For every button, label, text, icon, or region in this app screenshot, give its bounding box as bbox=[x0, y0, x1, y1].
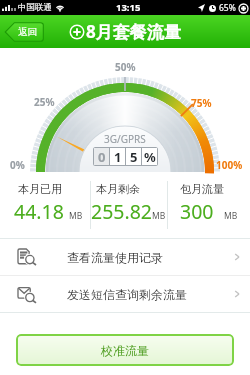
staticText: 返回 bbox=[18, 26, 37, 38]
button[interactable]: 返回 bbox=[4, 22, 44, 42]
staticText: 0 bbox=[98, 148, 106, 165]
staticText: 发送短信查询剩余流量 bbox=[67, 287, 187, 302]
button[interactable]: 校准流量 bbox=[16, 334, 234, 366]
staticText: 100% bbox=[216, 158, 243, 172]
staticText: 查看流量使用记录 bbox=[67, 250, 163, 265]
staticText: 13:15 bbox=[116, 1, 141, 14]
staticText: MB bbox=[152, 210, 166, 222]
staticText: 5 bbox=[130, 148, 138, 165]
staticText: % bbox=[144, 148, 156, 165]
staticText: 8月套餐流量 bbox=[86, 20, 181, 43]
staticText: 0% bbox=[10, 158, 25, 172]
staticText: 包月流量 bbox=[180, 182, 224, 196]
staticText: 255.82 bbox=[91, 198, 152, 225]
staticText: 300 bbox=[180, 198, 214, 225]
staticText: MB bbox=[224, 210, 238, 222]
staticText: 65% bbox=[219, 2, 236, 14]
staticText: 校准流量 bbox=[101, 343, 149, 358]
staticText: MB bbox=[69, 210, 83, 222]
staticText: 25% bbox=[34, 95, 55, 109]
button[interactable]: 发送短信查询剩余流量 bbox=[0, 276, 250, 312]
staticText: 本月已用 bbox=[18, 182, 62, 196]
staticText: 50% bbox=[115, 60, 136, 74]
staticText: 75% bbox=[191, 96, 212, 110]
button[interactable]: 查看流量使用记录 bbox=[0, 239, 250, 275]
staticText: 1 bbox=[114, 148, 122, 165]
staticText: 3G/GPRS bbox=[104, 132, 146, 146]
staticText: 本月剩余 bbox=[96, 182, 140, 196]
staticText: 中国联通 bbox=[18, 2, 52, 13]
staticText: 44.18 bbox=[14, 198, 64, 225]
